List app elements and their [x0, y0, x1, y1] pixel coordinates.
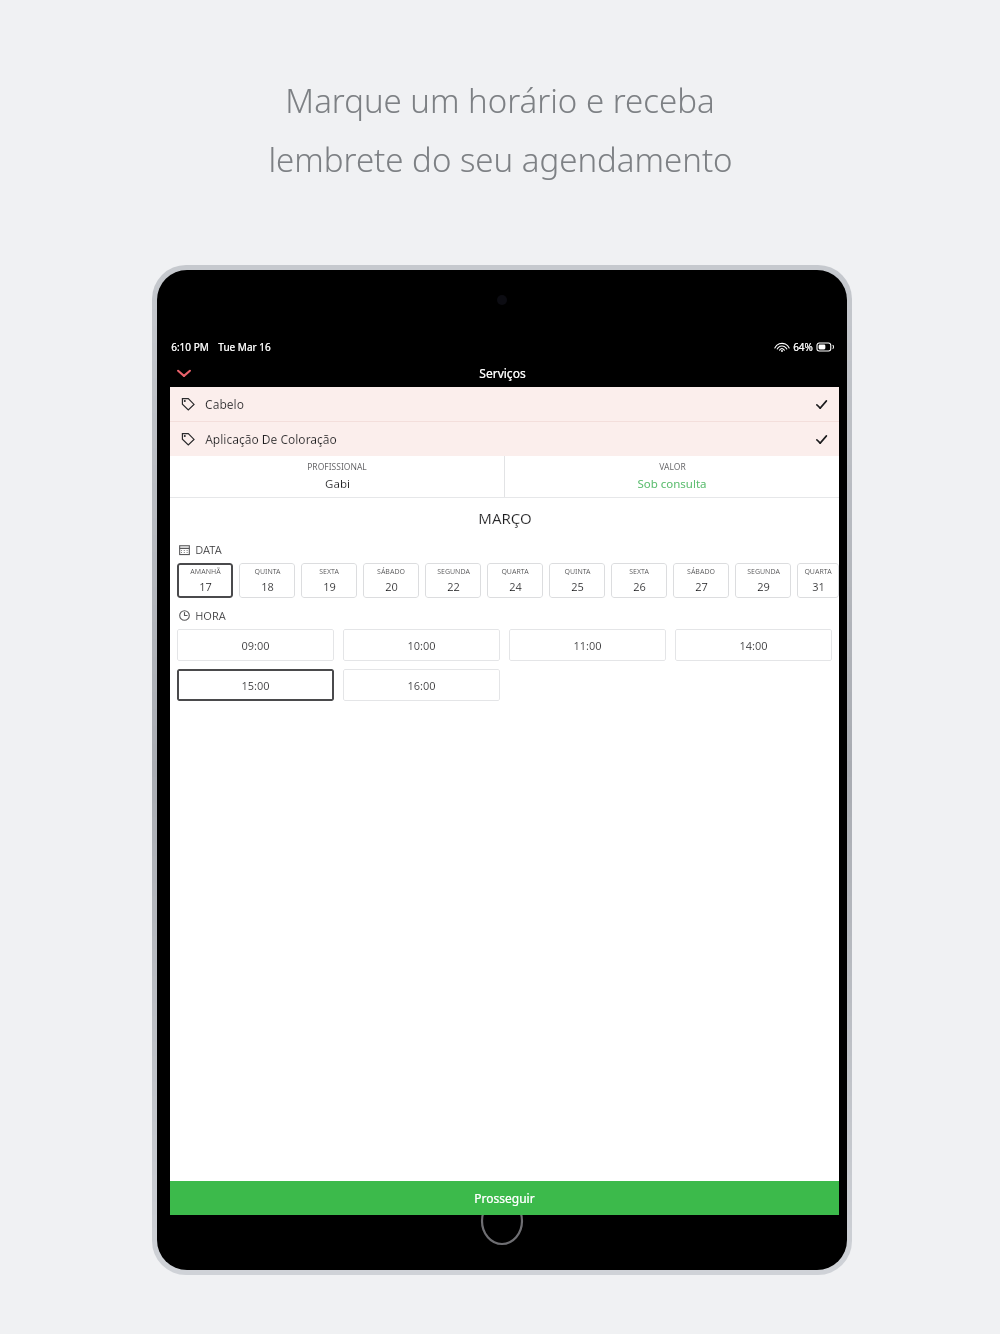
staticText: Marque um horário e receba — [285, 78, 715, 123]
staticText: Gabi — [325, 476, 350, 492]
staticText: DATA — [195, 542, 222, 557]
button[interactable]: QUINTA — [549, 563, 605, 598]
button[interactable]: SÁBADO — [673, 563, 729, 598]
button[interactable]: PROFISSIONAL — [170, 456, 504, 497]
staticText: SÁBADO — [377, 567, 405, 577]
staticText: SEXTA — [319, 567, 339, 577]
staticText: SEXTA — [629, 567, 649, 577]
staticText: 16:00 — [407, 678, 436, 693]
staticText: 09:00 — [241, 638, 270, 653]
staticText: 18 — [261, 579, 274, 594]
staticText: Serviços — [479, 365, 526, 381]
staticText: 25 — [571, 579, 584, 594]
staticText: 22 — [447, 579, 460, 594]
staticText: lembrete do seu agendamento — [268, 137, 733, 182]
button[interactable]: QUARTA — [487, 563, 543, 598]
staticText: 64% — [793, 340, 813, 354]
button[interactable]: Home — [480, 1196, 524, 1246]
staticText: Tue Mar 16 — [218, 340, 271, 354]
button[interactable]: SÁBADO — [363, 563, 419, 598]
button[interactable]: QUINTA — [239, 563, 295, 598]
staticText: Prosseguir — [474, 1190, 535, 1206]
button[interactable]: Fechar — [169, 358, 199, 388]
staticText: 20 — [385, 579, 398, 594]
staticText: 24 — [509, 579, 522, 594]
staticText: 26 — [633, 579, 646, 594]
staticText: 31 — [812, 579, 825, 594]
staticText: QUINTA — [564, 567, 591, 577]
button[interactable]: SEXTA — [301, 563, 357, 598]
staticText: SÁBADO — [687, 567, 715, 577]
button[interactable]: SEGUNDA — [425, 563, 481, 598]
button[interactable]: SEXTA — [611, 563, 667, 598]
button[interactable]: 09:00 — [177, 629, 334, 661]
staticText: VALOR — [659, 461, 686, 473]
button[interactable]: VALOR — [505, 456, 839, 497]
staticText: Sob consulta — [637, 476, 707, 492]
button[interactable]: Prosseguir — [170, 1181, 839, 1215]
button[interactable]: Aplicação De Coloração — [170, 422, 839, 456]
staticText: 15:00 — [241, 678, 270, 693]
staticText: Cabelo — [205, 396, 244, 412]
button[interactable]: AMANHÃ — [177, 563, 233, 598]
staticText: 29 — [757, 579, 770, 594]
staticText: 6:10 PM — [171, 340, 209, 354]
staticText: SEGUNDA — [437, 567, 470, 577]
staticText: MARÇO — [478, 508, 532, 528]
staticText: QUARTA — [804, 567, 832, 577]
staticText: Aplicação De Coloração — [205, 431, 337, 447]
staticText: AMANHÃ — [190, 567, 221, 577]
staticText: 19 — [323, 579, 336, 594]
staticText: 27 — [695, 579, 708, 594]
staticText: 14:00 — [739, 638, 768, 653]
staticText: HORA — [195, 608, 226, 623]
staticText: 10:00 — [407, 638, 436, 653]
staticText: QUINTA — [254, 567, 281, 577]
button[interactable]: Cabelo — [170, 387, 839, 421]
button[interactable]: 15:00 — [177, 669, 334, 701]
staticText: QUARTA — [501, 567, 529, 577]
button[interactable]: 10:00 — [343, 629, 500, 661]
staticText: PROFISSIONAL — [307, 461, 367, 473]
staticText: 17 — [199, 579, 212, 594]
staticText: SEGUNDA — [747, 567, 780, 577]
button[interactable]: 16:00 — [343, 669, 500, 701]
button[interactable]: SEGUNDA — [735, 563, 791, 598]
button[interactable]: 11:00 — [509, 629, 666, 661]
button[interactable]: 14:00 — [675, 629, 832, 661]
staticText: 11:00 — [573, 638, 602, 653]
button[interactable]: QUARTA — [797, 563, 839, 598]
